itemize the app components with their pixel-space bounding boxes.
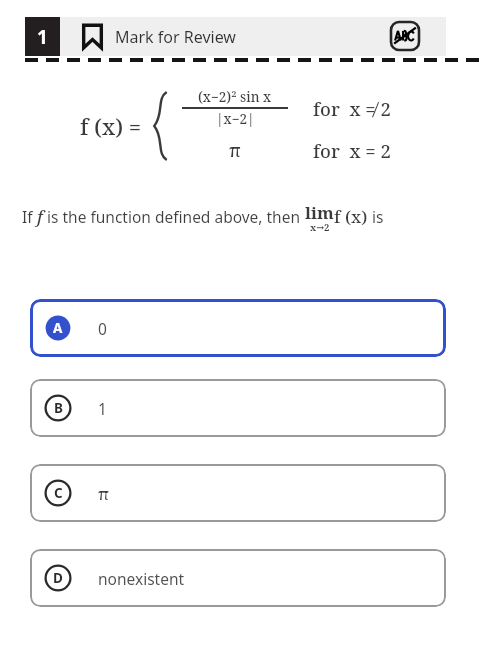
staticText: π xyxy=(229,138,241,163)
staticText: C xyxy=(54,484,63,502)
button[interactable]: Spell check off xyxy=(388,19,422,53)
staticText: (x−2)² sin x xyxy=(198,88,272,106)
staticText: lim xyxy=(305,201,334,224)
staticText: f (x) = xyxy=(80,111,142,141)
staticText: 0 xyxy=(98,318,107,339)
button[interactable]: C xyxy=(30,464,446,522)
staticText: A xyxy=(53,319,63,337)
staticText: Mark for Review xyxy=(115,26,236,48)
staticText: |x−2| xyxy=(216,110,255,128)
staticText: f xyxy=(37,205,43,228)
staticText: nonexistent xyxy=(98,568,185,589)
button[interactable]: A xyxy=(30,299,446,357)
staticText: 1 xyxy=(98,398,107,419)
staticText: for x ≠ 2 xyxy=(313,96,391,121)
staticText: f (x) xyxy=(334,205,368,228)
staticText: for x = 2 xyxy=(313,138,391,163)
button[interactable]: B xyxy=(30,379,446,437)
button[interactable]: D xyxy=(30,549,446,607)
button[interactable]: Mark for Review xyxy=(82,17,236,56)
staticText: If xyxy=(22,206,37,227)
staticText: is the function defined above, then xyxy=(43,206,305,227)
staticText: B xyxy=(54,399,63,417)
staticText: 1 xyxy=(37,24,48,50)
staticText: π xyxy=(98,482,110,505)
staticText: D xyxy=(53,569,63,587)
staticText: x→2 xyxy=(310,221,330,234)
staticText: is xyxy=(368,206,384,227)
